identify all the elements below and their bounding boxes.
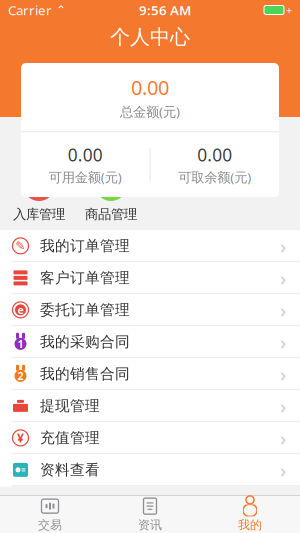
staticText: 可用金额(元) — [49, 168, 122, 186]
staticText: 我的 — [238, 518, 262, 532]
staticText: 充值管理 — [40, 429, 100, 447]
staticText: › — [280, 233, 286, 259]
staticText: 我的订单管理 — [40, 237, 130, 255]
button[interactable]: 2 — [0, 358, 300, 389]
staticText: 我的销售合同 — [40, 365, 130, 383]
button[interactable]: 客户订单管理 — [0, 262, 300, 293]
staticText: 2 — [17, 369, 23, 383]
staticText: 资料查看 — [40, 461, 100, 479]
staticText: e — [17, 303, 23, 317]
button[interactable]: 1 — [0, 326, 300, 357]
staticText: ¥ — [17, 430, 24, 446]
staticText: 商品管理 — [85, 206, 137, 222]
staticText: 可取余额(元) — [178, 168, 251, 186]
staticText: + — [286, 3, 292, 17]
staticText: 交易 — [38, 518, 62, 532]
button[interactable]: ↓ — [3, 169, 75, 222]
button[interactable]: ✎ — [0, 230, 300, 261]
button[interactable]: 提现管理 — [0, 390, 300, 421]
staticText: 1 — [17, 337, 23, 351]
button[interactable]: 商品管理 — [75, 169, 147, 222]
staticText: › — [280, 361, 286, 387]
staticText: › — [280, 457, 286, 483]
staticText: › — [280, 393, 286, 419]
staticText: 资讯 — [138, 518, 162, 532]
staticText: 0.00 — [131, 74, 169, 101]
button[interactable]: e — [0, 294, 300, 325]
staticText: › — [280, 265, 286, 291]
staticText: 0.00 — [68, 143, 103, 166]
button[interactable]: 资料查看 — [0, 454, 300, 485]
staticText: ⌃ — [52, 3, 66, 17]
button[interactable]: 交易 — [0, 496, 100, 533]
staticText: › — [280, 297, 286, 323]
staticText: 我的采购合同 — [40, 333, 130, 351]
staticText: 0.00 — [197, 143, 232, 166]
staticText: 总金额(元) — [120, 103, 180, 120]
button[interactable]: ¥ — [0, 422, 300, 453]
staticText: Carrier — [8, 1, 52, 19]
staticText: ✎ — [15, 239, 25, 253]
staticText: 客户订单管理 — [40, 269, 130, 287]
staticText: 提现管理 — [40, 397, 100, 415]
staticText: › — [280, 425, 286, 451]
button[interactable]: 我的 — [200, 496, 300, 533]
button[interactable]: 资讯 — [100, 496, 200, 533]
staticText: › — [280, 329, 286, 355]
staticText: 委托订单管理 — [40, 301, 130, 319]
staticText: 9:56 AM — [139, 1, 191, 19]
staticText: 个人中心 — [110, 25, 190, 49]
staticText: 入库管理 — [13, 206, 65, 222]
